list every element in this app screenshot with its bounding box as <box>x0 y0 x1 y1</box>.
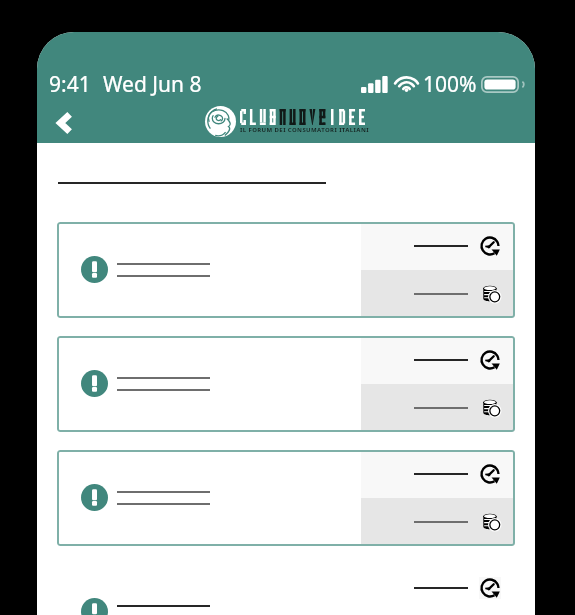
button[interactable]: History <box>479 235 501 257</box>
button[interactable]: History <box>57 222 515 318</box>
button[interactable]: Payments <box>479 511 501 533</box>
button[interactable]: Back <box>45 102 85 144</box>
staticText: 100% <box>423 70 477 99</box>
button[interactable]: Payments <box>479 283 501 305</box>
button[interactable]: History <box>479 577 501 599</box>
staticText: Wed Jun 8 <box>103 70 202 99</box>
staticText: IL FORUM DEI CONSUMATORI ITALIANI <box>240 126 369 134</box>
staticText: 9:41 <box>49 70 91 99</box>
button[interactable]: History <box>479 463 501 485</box>
button[interactable]: History <box>57 336 515 432</box>
button[interactable]: Payments <box>479 397 501 419</box>
button[interactable]: History <box>57 564 515 615</box>
button[interactable]: Club Nuove Idee home <box>205 106 370 137</box>
button[interactable]: History <box>57 450 515 546</box>
button[interactable]: History <box>479 349 501 371</box>
